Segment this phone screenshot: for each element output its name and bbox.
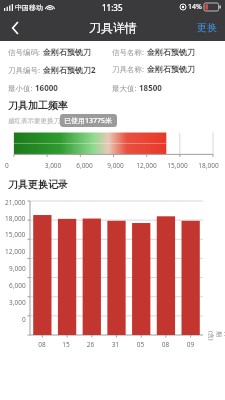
staticText: 18500 bbox=[139, 82, 162, 93]
staticText: 刀具更换记录 bbox=[8, 178, 68, 191]
staticText: 刀具详情 bbox=[89, 20, 137, 35]
staticText: 6,000 bbox=[69, 161, 100, 170]
staticText: 18,000 bbox=[193, 161, 224, 170]
staticText: 9,000 bbox=[9, 264, 26, 273]
staticText: 金刚石预铣刀 bbox=[147, 47, 195, 57]
staticText: 信号名称: bbox=[112, 47, 145, 57]
staticText: 12,000 bbox=[5, 247, 26, 256]
staticText: 18,000 bbox=[5, 214, 26, 223]
staticText: 09 bbox=[178, 340, 203, 349]
staticText: 21,000 bbox=[5, 198, 26, 207]
staticText: 31 bbox=[103, 340, 128, 349]
staticText: 26 bbox=[78, 340, 103, 349]
staticText: 越红表示要更换刀具 bbox=[8, 117, 67, 125]
staticText: 更换 bbox=[197, 21, 217, 34]
staticText: 最小值: bbox=[8, 83, 33, 93]
staticText: 刀具加工频率 bbox=[8, 99, 68, 112]
staticText: 9,000 bbox=[100, 161, 131, 170]
staticText: 15,000 bbox=[5, 230, 26, 239]
staticText: 15,000 bbox=[162, 161, 193, 170]
staticText: 金刚石预铣刀2 bbox=[43, 64, 96, 75]
staticText: 12,000 bbox=[131, 161, 162, 170]
staticText: 最大值: bbox=[112, 83, 137, 93]
staticText: 6,000 bbox=[9, 281, 26, 290]
staticText: 08 bbox=[153, 340, 178, 349]
staticText: 11:35 bbox=[102, 2, 123, 13]
staticText: 已使用13775米 bbox=[64, 116, 113, 125]
staticText: 刀具名称: bbox=[112, 64, 145, 74]
staticText: 08 bbox=[30, 340, 54, 349]
staticText: 信号编码: bbox=[8, 47, 41, 57]
staticText: 14% bbox=[188, 2, 202, 12]
button[interactable]: 更换 bbox=[189, 14, 225, 41]
staticText: 3,000 bbox=[37, 161, 69, 170]
staticText: 日期(含) bbox=[207, 331, 225, 341]
button[interactable]: Back bbox=[0, 14, 30, 41]
staticText: 0 bbox=[22, 315, 26, 324]
staticText: 金刚石预铣刀 bbox=[43, 47, 91, 57]
staticText: 3,000 bbox=[9, 298, 26, 307]
staticText: 刀具编号: bbox=[8, 65, 41, 75]
staticText: 中国移动 bbox=[15, 3, 43, 12]
staticText: 金刚石预铣刀 bbox=[147, 64, 195, 74]
staticText: 0 bbox=[5, 161, 37, 170]
staticText: 15 bbox=[54, 340, 78, 349]
staticText: 05 bbox=[128, 340, 153, 349]
staticText: 16000 bbox=[35, 82, 58, 93]
